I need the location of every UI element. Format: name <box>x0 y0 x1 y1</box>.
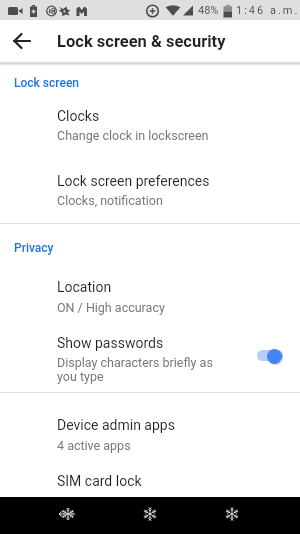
staticText: Show passwords <box>57 335 164 351</box>
button[interactable] <box>0 462 300 497</box>
staticText: Display characters briefly as <box>57 355 213 370</box>
staticText: Lock screen & security <box>57 32 226 51</box>
button[interactable] <box>0 410 300 458</box>
staticText: Device admin apps <box>57 417 175 433</box>
staticText: you type <box>57 369 104 384</box>
staticText: Clocks, notification <box>57 193 163 208</box>
button[interactable] <box>124 497 172 534</box>
button[interactable] <box>6 25 38 57</box>
staticText: Clocks <box>57 108 100 124</box>
button[interactable] <box>0 271 300 321</box>
button[interactable] <box>0 166 300 216</box>
staticText: ON / High accuracy <box>57 300 165 315</box>
staticText: SIM card lock <box>57 473 142 489</box>
button[interactable] <box>42 497 90 534</box>
button[interactable] <box>208 497 256 534</box>
staticText: 1:46 a.m. <box>236 4 300 17</box>
staticText: Privacy <box>14 241 54 255</box>
staticText: 48% <box>198 4 219 17</box>
staticText: Location <box>57 279 112 295</box>
button[interactable] <box>251 342 291 369</box>
button[interactable] <box>0 328 300 390</box>
staticText: Lock screen preferences <box>57 173 210 189</box>
staticText: 4 active apps <box>57 438 131 453</box>
button[interactable] <box>0 101 300 150</box>
staticText: Change clock in lockscreen <box>57 128 209 143</box>
staticText: Lock screen <box>14 76 80 90</box>
